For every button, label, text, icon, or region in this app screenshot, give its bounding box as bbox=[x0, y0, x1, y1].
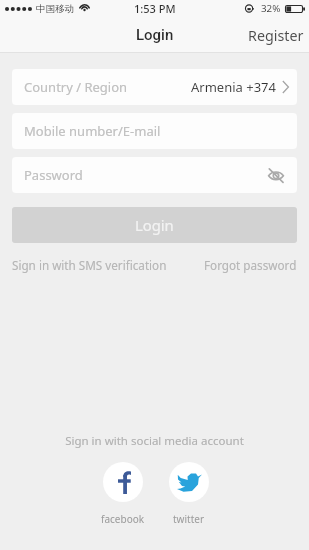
staticText: Login bbox=[135, 215, 174, 235]
button[interactable]: Country / Region bbox=[12, 69, 297, 105]
staticText: Sign in with SMS verification bbox=[12, 257, 167, 273]
staticText: facebook bbox=[101, 512, 145, 526]
staticText: twitter bbox=[173, 512, 205, 526]
staticText: 1:53 PM bbox=[134, 1, 176, 16]
staticText: 中国移动 bbox=[36, 3, 74, 15]
staticText: Login bbox=[136, 26, 174, 44]
button[interactable]: Password bbox=[12, 157, 297, 193]
button[interactable]: Register bbox=[248, 26, 304, 45]
staticText: 32% bbox=[261, 2, 281, 15]
staticText: Password bbox=[24, 166, 83, 184]
staticText: Sign in with social media account bbox=[0, 433, 309, 449]
staticText: Country / Region bbox=[24, 78, 128, 96]
button[interactable]: Mobile number/E-mail bbox=[12, 113, 297, 149]
button[interactable]: Login bbox=[12, 207, 297, 243]
button[interactable]: Sign in with twitter bbox=[169, 462, 209, 502]
staticText: Register bbox=[248, 26, 304, 45]
staticText: Forgot password bbox=[204, 257, 297, 273]
button[interactable]: Forgot password bbox=[204, 257, 297, 273]
button[interactable]: Sign in with facebook bbox=[103, 462, 143, 502]
staticText: Mobile number/E-mail bbox=[24, 122, 161, 140]
button[interactable]: Sign in with SMS verification bbox=[12, 257, 167, 273]
button[interactable]: Show password bbox=[265, 164, 287, 186]
staticText: Armenia +374 bbox=[191, 78, 276, 96]
